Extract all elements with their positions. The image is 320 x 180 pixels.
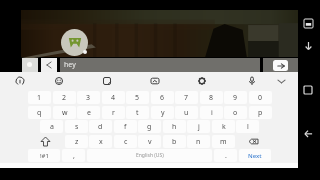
staticText: h bbox=[172, 122, 177, 132]
button[interactable]: Back bbox=[302, 126, 314, 138]
staticText: English (US) bbox=[136, 152, 164, 159]
button[interactable]: Shift bbox=[27, 134, 64, 149]
button[interactable]: e bbox=[77, 106, 100, 119]
button[interactable]: y bbox=[151, 106, 174, 119]
staticText: Next bbox=[248, 152, 262, 160]
staticText: p bbox=[258, 108, 263, 118]
staticText: . bbox=[225, 151, 227, 161]
button[interactable]: x bbox=[89, 135, 112, 148]
button[interactable]: 5 bbox=[126, 91, 149, 104]
staticText: 5 bbox=[135, 93, 140, 103]
button[interactable]: g bbox=[138, 120, 161, 133]
staticText: a bbox=[50, 122, 54, 132]
button[interactable]: 3 bbox=[77, 91, 100, 104]
button[interactable]: 7 bbox=[175, 91, 198, 104]
button[interactable]: Stickers bbox=[96, 72, 118, 90]
staticText: d bbox=[98, 122, 103, 132]
button[interactable]: c bbox=[114, 135, 137, 148]
staticText: u bbox=[184, 108, 189, 118]
staticText: 8 bbox=[209, 93, 214, 103]
staticText: , bbox=[73, 151, 75, 161]
button[interactable]: u bbox=[175, 106, 198, 119]
button[interactable]: Settings bbox=[191, 72, 213, 90]
button[interactable]: Backspace bbox=[235, 134, 272, 149]
button[interactable]: p bbox=[249, 106, 272, 119]
button[interactable]: a bbox=[40, 120, 63, 133]
button[interactable]: n bbox=[187, 135, 210, 148]
button[interactable]: d bbox=[89, 120, 112, 133]
button[interactable]: k bbox=[212, 120, 235, 133]
button[interactable]: t bbox=[126, 106, 149, 119]
staticText: o bbox=[233, 108, 238, 118]
staticText: s bbox=[75, 122, 79, 132]
staticText: y bbox=[161, 108, 165, 118]
staticText: 9 bbox=[233, 93, 238, 103]
button[interactable]: Screenshot bbox=[302, 17, 314, 29]
staticText: f bbox=[124, 122, 127, 132]
button[interactable]: v bbox=[138, 135, 161, 148]
button[interactable]: Next bbox=[239, 149, 271, 162]
button[interactable]: . bbox=[214, 149, 237, 162]
button[interactable]: 2 bbox=[53, 91, 76, 104]
button[interactable]: !#1 bbox=[28, 149, 60, 162]
button[interactable]: l bbox=[236, 120, 259, 133]
button[interactable]: 8 bbox=[200, 91, 223, 104]
button[interactable]: Emoji bbox=[48, 72, 70, 90]
staticText: i bbox=[211, 108, 213, 118]
staticText: n bbox=[196, 137, 201, 147]
button[interactable]: b bbox=[163, 135, 186, 148]
button[interactable]: Profile avatar bbox=[61, 29, 88, 56]
button[interactable]: j bbox=[187, 120, 210, 133]
staticText: x bbox=[99, 137, 103, 147]
staticText: 2 bbox=[62, 93, 67, 103]
staticText: 7 bbox=[184, 93, 189, 103]
button[interactable]: English (US) bbox=[87, 149, 212, 162]
staticText: c bbox=[124, 137, 128, 147]
button[interactable]: 0 bbox=[249, 91, 272, 104]
staticText: r bbox=[112, 108, 115, 118]
staticText: l bbox=[247, 122, 249, 132]
button[interactable]: Gallery bbox=[22, 58, 38, 72]
staticText: b bbox=[172, 137, 177, 147]
button[interactable]: s bbox=[65, 120, 88, 133]
staticText: 4 bbox=[111, 93, 116, 103]
staticText: 3 bbox=[86, 93, 91, 103]
staticText: t bbox=[136, 108, 139, 118]
staticText: m bbox=[220, 137, 227, 147]
button[interactable]: Download bbox=[302, 40, 314, 52]
button[interactable]: 6 bbox=[151, 91, 174, 104]
staticText: hey bbox=[64, 60, 76, 70]
button[interactable]: q bbox=[28, 106, 51, 119]
button[interactable]: , bbox=[62, 149, 85, 162]
button[interactable]: Collapse bbox=[270, 72, 292, 90]
staticText: v bbox=[148, 137, 152, 147]
button[interactable]: 9 bbox=[224, 91, 247, 104]
staticText: 6 bbox=[160, 93, 165, 103]
staticText: g bbox=[147, 122, 152, 132]
staticText: z bbox=[75, 137, 79, 147]
staticText: w bbox=[62, 108, 68, 118]
button[interactable]: o bbox=[224, 106, 247, 119]
button[interactable]: m bbox=[212, 135, 235, 148]
button[interactable]: hey bbox=[60, 58, 260, 72]
button[interactable]: 4 bbox=[102, 91, 125, 104]
button[interactable]: z bbox=[65, 135, 88, 148]
button[interactable]: w bbox=[53, 106, 76, 119]
staticText: e bbox=[87, 108, 91, 118]
staticText: 1 bbox=[37, 93, 42, 103]
button[interactable]: r bbox=[102, 106, 125, 119]
button[interactable]: i bbox=[200, 106, 223, 119]
staticText: 0 bbox=[258, 93, 263, 103]
button[interactable]: Voice typing bbox=[9, 72, 31, 90]
button[interactable]: Recent apps bbox=[302, 84, 314, 96]
button[interactable]: f bbox=[114, 120, 137, 133]
staticText: q bbox=[37, 108, 42, 118]
button[interactable]: h bbox=[163, 120, 186, 133]
staticText: j bbox=[198, 122, 200, 132]
button[interactable]: Microphone bbox=[241, 72, 263, 90]
button[interactable]: 1 bbox=[28, 91, 51, 104]
button[interactable]: GIF bbox=[144, 72, 166, 90]
button[interactable]: Send bbox=[263, 58, 298, 72]
staticText: !#1 bbox=[40, 152, 49, 160]
button[interactable]: Expand options bbox=[41, 58, 57, 72]
